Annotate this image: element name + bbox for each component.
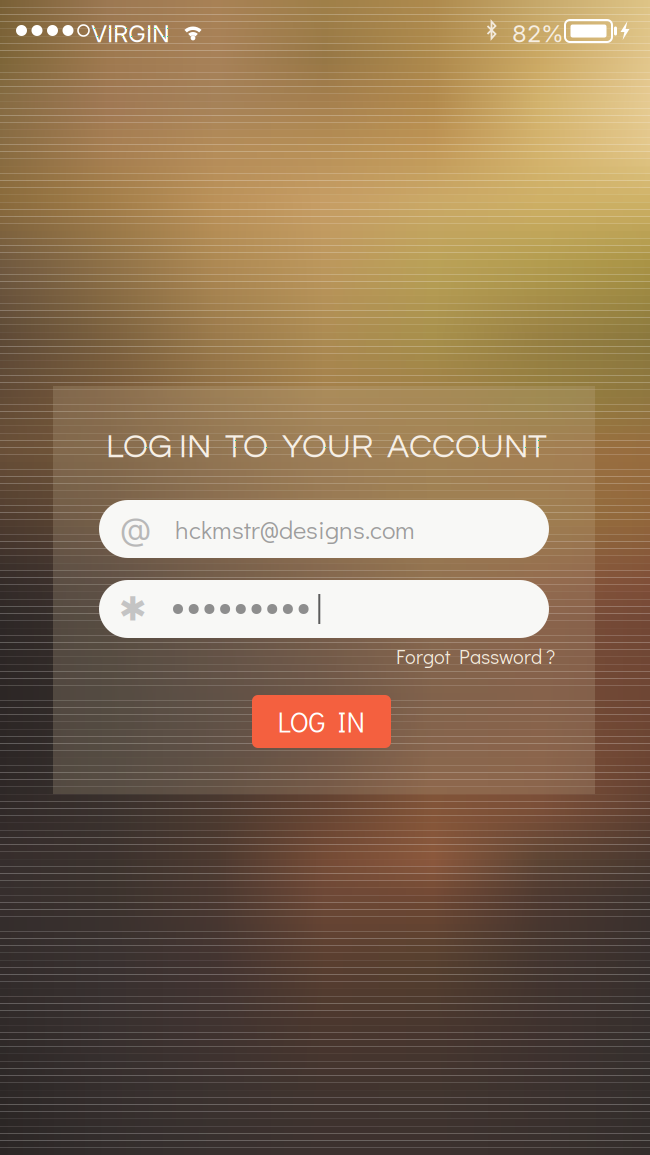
staticText: LOG IN TO YOUR ACCOUNT [106,430,547,464]
staticText: 82% [512,19,564,48]
button[interactable]: LOG IN [252,695,391,748]
staticText: VIRGIN [91,19,170,48]
button[interactable]: Forgot Password ? [390,639,561,673]
staticText: hckmstr@designs.com [175,512,415,546]
staticText: Forgot Password ? [396,643,555,669]
staticText: LOG IN [277,703,365,740]
staticText: ✱ [119,590,147,628]
staticText: @ [120,510,151,548]
